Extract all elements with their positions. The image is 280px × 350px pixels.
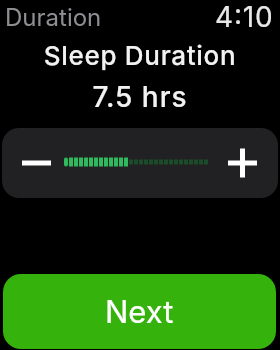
staticText: 7.5 hrs [0, 80, 280, 114]
button[interactable] [2, 128, 66, 198]
button[interactable]: Next [3, 274, 276, 349]
staticText: Next [105, 293, 174, 331]
staticText: 4:10 [215, 0, 274, 34]
staticText: Duration [5, 3, 102, 32]
button[interactable] [214, 128, 278, 198]
staticText: Sleep Duration [0, 40, 280, 71]
